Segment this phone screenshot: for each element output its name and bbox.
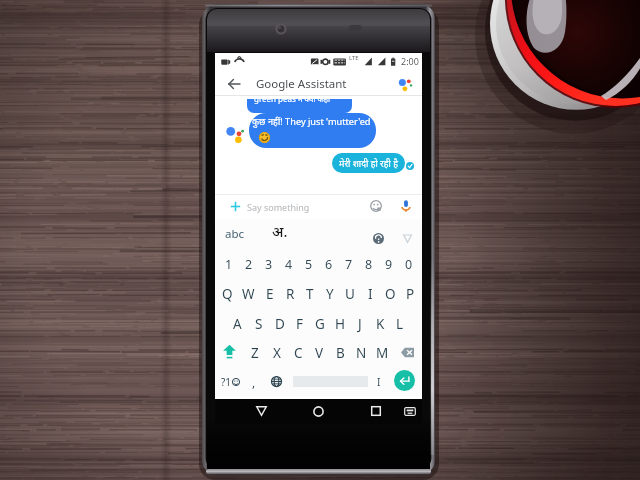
button[interactable]: C	[288, 338, 309, 367]
button[interactable]: अ.	[272, 221, 288, 241]
button[interactable]: Q	[217, 279, 238, 309]
staticText: 1	[225, 256, 233, 273]
staticText: W	[242, 285, 255, 303]
staticText: A	[233, 315, 242, 333]
staticText: E	[266, 285, 274, 303]
button[interactable]: 5	[299, 249, 319, 279]
staticText: 0	[405, 256, 413, 273]
staticText: R	[286, 285, 295, 303]
button[interactable]: Hide keyboard	[398, 399, 422, 423]
button[interactable]: E	[259, 279, 280, 309]
staticText: J	[358, 315, 362, 333]
staticText: Y	[326, 285, 334, 303]
button[interactable]: X	[266, 338, 288, 367]
staticText: I	[377, 375, 381, 389]
staticText: 6	[325, 256, 333, 273]
button[interactable]: 0	[399, 249, 419, 279]
staticText: M	[376, 344, 389, 362]
staticText: abc	[225, 226, 245, 242]
button[interactable]: N	[351, 338, 372, 367]
button[interactable]: Shift	[215, 338, 244, 367]
button[interactable]: Say something	[215, 194, 422, 219]
button[interactable]: I	[372, 367, 386, 396]
button[interactable]: 3	[259, 249, 279, 279]
staticText: H	[335, 315, 346, 333]
button[interactable]: Recent apps	[364, 399, 388, 423]
button[interactable]: S	[248, 309, 269, 338]
button[interactable]: G	[310, 309, 330, 338]
button[interactable]: W	[238, 279, 259, 309]
button[interactable]: Z	[244, 338, 266, 367]
button[interactable]: R	[280, 279, 300, 309]
button[interactable]: Back	[223, 73, 245, 95]
button[interactable]: green peas न क्या कहां	[247, 99, 352, 113]
staticText: O	[385, 285, 396, 303]
button[interactable]: Backspace	[393, 338, 422, 367]
button[interactable]: abc	[225, 226, 245, 242]
button[interactable]: Back	[249, 399, 273, 423]
staticText: 5	[305, 256, 313, 273]
button[interactable]: O	[380, 279, 400, 309]
button[interactable]: Home	[306, 399, 330, 423]
button[interactable]: U	[340, 279, 360, 309]
staticText: मेरी शादी हो रही है	[339, 157, 398, 169]
button[interactable]: 9	[379, 249, 399, 279]
staticText: X	[273, 344, 281, 362]
staticText: 2	[245, 256, 253, 273]
staticText: F	[296, 315, 304, 333]
staticText: I	[368, 285, 373, 303]
button[interactable]: Voice search	[398, 198, 414, 214]
staticText: T	[306, 285, 314, 303]
button[interactable]: 8	[359, 249, 379, 279]
staticText: K	[376, 315, 385, 333]
button[interactable]: D	[269, 309, 290, 338]
staticText: 9	[385, 256, 393, 273]
staticText: Q	[222, 285, 233, 303]
button[interactable]: Google Assistant	[395, 74, 415, 94]
staticText: 4	[285, 256, 293, 273]
button[interactable]: I	[360, 279, 380, 309]
button[interactable]: 6	[319, 249, 339, 279]
button[interactable]: 1	[218, 249, 239, 279]
button[interactable]: Y	[320, 279, 340, 309]
staticText: कुछ नहीं! They just 'mutter'ed	[252, 115, 371, 128]
button[interactable]: ?1	[215, 367, 245, 396]
button[interactable]: ,	[245, 367, 263, 396]
button[interactable]: मेरी शादी हो रही है	[332, 153, 405, 173]
button[interactable]: A	[227, 309, 248, 338]
button[interactable]: H	[330, 309, 350, 338]
button[interactable]: Enter	[386, 367, 422, 396]
button[interactable]: V	[309, 338, 330, 367]
staticText: V	[315, 344, 324, 362]
button[interactable]: 4	[279, 249, 299, 279]
button[interactable]: L	[390, 309, 410, 338]
button[interactable]: Switch language	[263, 367, 289, 396]
button[interactable]: J	[350, 309, 370, 338]
button[interactable]: F	[290, 309, 310, 338]
staticText: D	[275, 315, 285, 333]
staticText: C	[294, 344, 303, 362]
staticText: N	[356, 344, 367, 362]
button[interactable]: B	[330, 338, 351, 367]
button[interactable]: More suggestions	[402, 233, 413, 244]
button[interactable]: M	[372, 338, 393, 367]
staticText: 8	[365, 256, 373, 273]
staticText: Say something	[247, 201, 310, 213]
staticText: ,	[252, 374, 256, 390]
button[interactable]: 7	[339, 249, 359, 279]
button[interactable]: T	[300, 279, 320, 309]
button[interactable]: P	[400, 279, 420, 309]
staticText: 3	[265, 256, 273, 273]
button[interactable]: 2	[239, 249, 259, 279]
staticText: 7	[345, 256, 353, 273]
button[interactable]: K	[370, 309, 390, 338]
staticText: 2:00	[401, 55, 419, 67]
button[interactable]: Emoji keyboard	[368, 198, 384, 214]
staticText: B	[336, 344, 345, 362]
button[interactable]: Help	[372, 232, 385, 245]
staticText: G	[315, 315, 325, 333]
staticText: LTE	[349, 54, 359, 62]
staticText: P	[406, 285, 415, 303]
button[interactable]: कुछ नहीं! They just 'mutter'ed	[249, 113, 376, 148]
